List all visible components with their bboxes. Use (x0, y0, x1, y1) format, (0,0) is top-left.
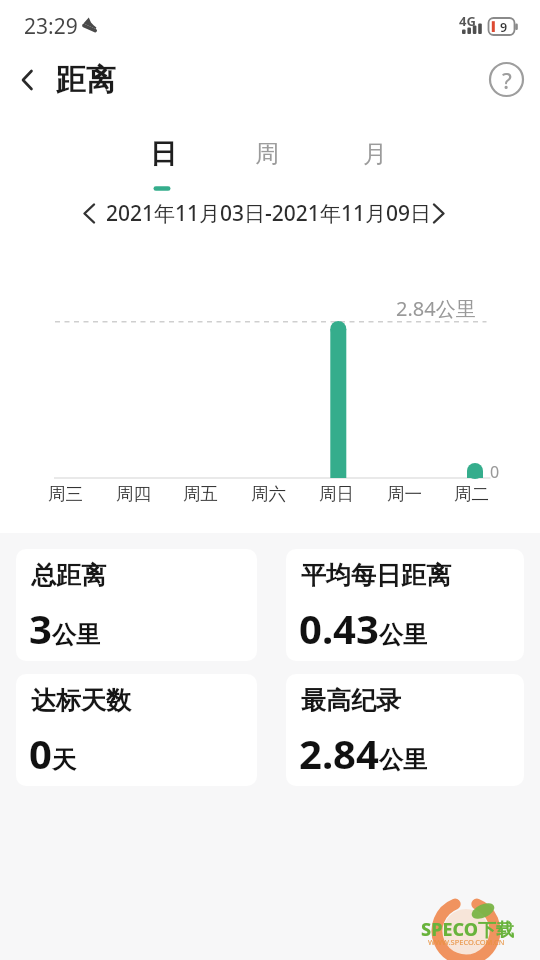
button[interactable] (10, 61, 48, 99)
staticText: 3 (29, 601, 52, 655)
staticText: 总距离 (31, 560, 106, 591)
staticText: 天 (52, 745, 76, 775)
staticText: 2021年11月03日-2021年11月09日 (106, 199, 431, 228)
staticText: 2.84公里 (396, 295, 476, 322)
staticText: 周一 (387, 483, 422, 505)
staticText: SPECO下载 (421, 917, 514, 942)
staticText: 月 (363, 139, 387, 169)
staticText: 周三 (48, 483, 83, 505)
button[interactable]: ? (487, 60, 527, 100)
staticText: 周五 (183, 483, 218, 505)
staticText: 0 (29, 726, 52, 780)
staticText: 周四 (116, 483, 151, 505)
button[interactable] (16, 674, 257, 786)
staticText: 距离 (56, 61, 116, 99)
staticText: 周 (255, 139, 279, 169)
button[interactable] (286, 549, 524, 661)
button[interactable]: 日 (128, 132, 198, 176)
staticText: 0.43 (299, 601, 379, 655)
staticText: 周日 (319, 483, 354, 505)
staticText: 0 (490, 461, 500, 483)
staticText: 公里 (379, 620, 427, 650)
staticText: 9 (500, 19, 508, 36)
button[interactable]: 周 (232, 132, 302, 176)
staticText: 2.84 (299, 726, 379, 780)
staticText: 周六 (251, 483, 286, 505)
staticText: 公里 (379, 745, 427, 775)
staticText: 最高纪录 (301, 685, 401, 716)
staticText: WWW.SPECO.COM.CN (428, 937, 505, 947)
button[interactable]: 2021年11月03日-2021年11月09日 (88, 195, 448, 231)
staticText: 日 (150, 137, 177, 171)
staticText: 公里 (52, 620, 100, 650)
staticText: ? (502, 65, 512, 95)
staticText: 周二 (454, 483, 489, 505)
staticText: 达标天数 (31, 685, 131, 716)
staticText: 平均每日距离 (301, 560, 451, 591)
staticText: 23:29 (24, 12, 78, 41)
staticText: 4G (459, 12, 476, 30)
button[interactable] (16, 549, 257, 661)
button[interactable] (286, 674, 524, 786)
button[interactable]: 月 (340, 132, 410, 176)
